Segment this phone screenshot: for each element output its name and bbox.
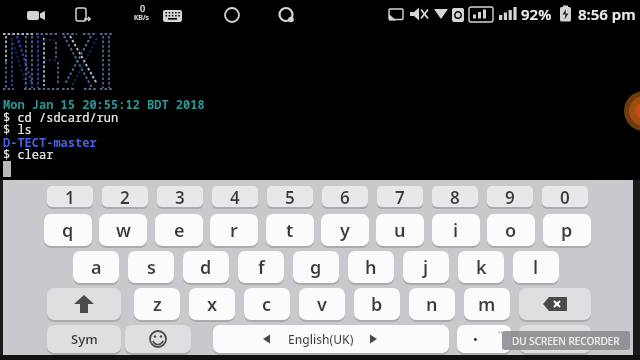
button[interactable]: DU SCREEN RECORDER: [502, 331, 630, 350]
button[interactable]: 2: [102, 186, 148, 207]
button[interactable]: v: [299, 288, 345, 320]
staticText: g: [310, 255, 322, 280]
staticText: $ ls: [3, 121, 32, 137]
staticText: h: [365, 255, 377, 280]
staticText: ...: [498, 325, 505, 335]
staticText: 4: [230, 186, 240, 207]
button[interactable]: z: [134, 288, 180, 320]
staticText: k: [476, 255, 487, 280]
staticText: v: [317, 292, 327, 317]
staticText: p: [561, 218, 573, 243]
button[interactable]: o: [487, 214, 535, 246]
button[interactable]: i: [432, 214, 480, 246]
button[interactable]: l: [513, 251, 559, 283]
button[interactable]: m: [464, 288, 510, 320]
button[interactable]: j: [403, 251, 449, 283]
button[interactable]: 4: [212, 186, 258, 207]
button[interactable]: y: [321, 214, 369, 246]
staticText: w: [116, 218, 131, 243]
staticText: 8: [450, 186, 460, 207]
staticText: 5: [285, 186, 295, 207]
staticText: r: [230, 218, 238, 243]
button[interactable]: c: [244, 288, 290, 320]
button[interactable]: 0: [542, 186, 588, 207]
staticText: o: [505, 218, 517, 243]
button[interactable]: a: [73, 251, 119, 283]
button[interactable]: 6: [322, 186, 368, 207]
staticText: .: [473, 325, 478, 346]
button[interactable]: w: [99, 214, 147, 246]
button[interactable]: t: [266, 214, 314, 246]
staticText: 2: [120, 186, 130, 207]
button[interactable]: [519, 325, 591, 353]
staticText: 6: [340, 186, 350, 207]
staticText: English(UK): [288, 331, 354, 347]
staticText: DU SCREEN RECORDER: [512, 334, 620, 348]
staticText: d: [200, 255, 212, 280]
button[interactable]: 9: [487, 186, 533, 207]
staticText: 3: [175, 186, 185, 207]
staticText: 9: [505, 186, 515, 207]
button[interactable]: 8: [432, 186, 478, 207]
button[interactable]: 1: [47, 186, 93, 207]
staticText: $ cd /sdcard/run: [3, 109, 119, 125]
staticText: j: [423, 255, 429, 280]
staticText: y: [340, 218, 350, 243]
staticText: 0: [140, 2, 146, 14]
button[interactable]: 7: [377, 186, 423, 207]
staticText: f: [258, 255, 265, 280]
staticText: 0: [560, 186, 570, 207]
button[interactable]: 3: [157, 186, 203, 207]
button[interactable]: b: [354, 288, 400, 320]
button[interactable]: p: [543, 214, 591, 246]
button[interactable]: e: [155, 214, 203, 246]
button[interactable]: [125, 325, 191, 353]
button[interactable]: [47, 288, 121, 320]
staticText: x: [207, 292, 218, 317]
staticText: 8:56 pm: [578, 4, 636, 24]
staticText: a: [91, 255, 102, 280]
button[interactable]: Sym: [47, 325, 121, 353]
staticText: Sym: [71, 330, 98, 348]
staticText: u: [394, 218, 406, 243]
staticText: D-TECT-master: [3, 134, 97, 150]
button[interactable]: q: [44, 214, 92, 246]
button[interactable]: 5: [267, 186, 313, 207]
staticText: 7: [395, 186, 405, 207]
button[interactable]: n: [409, 288, 455, 320]
button[interactable]: f: [238, 251, 284, 283]
staticText: 92%: [521, 4, 552, 24]
staticText: $ clear: [3, 146, 54, 162]
staticText: b: [371, 292, 383, 317]
button[interactable]: r: [210, 214, 258, 246]
button[interactable]: d: [183, 251, 229, 283]
staticText: KB/s: [134, 13, 149, 23]
staticText: i: [453, 218, 459, 243]
button[interactable]: x: [189, 288, 235, 320]
button[interactable]: English(UK): [213, 325, 449, 353]
button[interactable]: s: [128, 251, 174, 283]
staticText: 1: [65, 186, 75, 207]
staticText: n: [426, 292, 438, 317]
staticText: e: [174, 218, 185, 243]
staticText: Mon Jan 15 20:55:12 BDT 2018: [3, 96, 205, 112]
staticText: m: [478, 292, 496, 317]
staticText: l: [533, 255, 539, 280]
staticText: t: [286, 218, 294, 243]
staticText: q: [62, 218, 74, 243]
staticText: s: [147, 255, 156, 280]
button[interactable]: .: [457, 325, 511, 353]
staticText: c: [262, 292, 272, 317]
button[interactable]: h: [348, 251, 394, 283]
button[interactable]: u: [376, 214, 424, 246]
button[interactable]: [519, 288, 591, 320]
button[interactable]: k: [458, 251, 504, 283]
button[interactable]: [624, 91, 640, 131]
staticText: z: [153, 292, 162, 317]
button[interactable]: g: [293, 251, 339, 283]
